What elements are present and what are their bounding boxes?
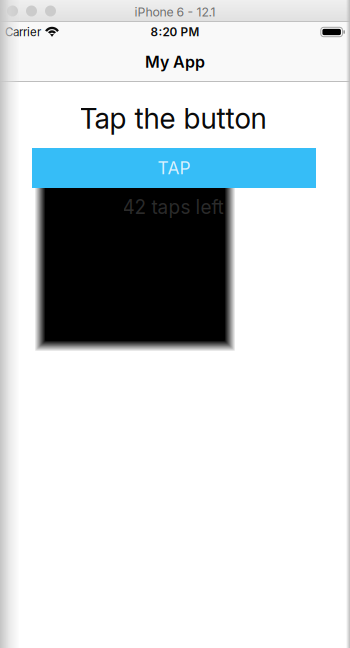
staticText: 42 taps left xyxy=(122,195,223,218)
staticText: My App xyxy=(145,52,205,72)
staticText: iPhone 6 - 12.1 xyxy=(134,5,215,19)
staticText: Carrier xyxy=(5,25,41,39)
staticText: Tap the button xyxy=(79,101,266,136)
staticText: 8:20 PM xyxy=(150,25,199,39)
staticText: TAP xyxy=(157,157,190,178)
button[interactable]: TAP xyxy=(32,148,316,188)
